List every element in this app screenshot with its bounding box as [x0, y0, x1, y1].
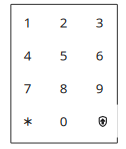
button[interactable]: 8: [46, 72, 82, 105]
staticText: 9: [96, 79, 104, 97]
button[interactable]: Home security: [82, 105, 118, 137]
button[interactable]: ∗: [10, 105, 46, 137]
staticText: 8: [60, 79, 68, 97]
staticText: 0: [60, 112, 68, 130]
staticText: 3: [96, 13, 104, 31]
button[interactable]: 9: [82, 72, 118, 105]
button[interactable]: 6: [82, 39, 118, 72]
staticText: 4: [24, 46, 32, 64]
staticText: 2: [60, 13, 68, 31]
staticText: 7: [24, 79, 32, 97]
button[interactable]: 7: [10, 72, 46, 105]
button[interactable]: 3: [82, 6, 118, 39]
button[interactable]: 1: [10, 6, 46, 39]
staticText: ∗: [22, 113, 33, 129]
button[interactable]: 4: [10, 39, 46, 72]
button[interactable]: 5: [46, 39, 82, 72]
button[interactable]: 2: [46, 6, 82, 39]
button[interactable]: 0: [46, 105, 82, 137]
staticText: 1: [24, 13, 32, 31]
staticText: 5: [60, 46, 68, 64]
staticText: 6: [96, 46, 104, 64]
